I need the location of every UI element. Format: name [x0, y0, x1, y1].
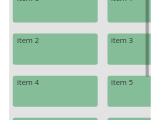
- button[interactable]: [13, 118, 98, 120]
- button[interactable]: [108, 76, 151, 107]
- staticText: item 4: [17, 77, 40, 87]
- staticText: item 1: [111, 0, 134, 3]
- button[interactable]: [13, 0, 98, 22]
- button[interactable]: [13, 76, 98, 107]
- staticText: item 2: [17, 35, 40, 45]
- button[interactable]: [108, 118, 151, 120]
- staticText: item 3: [111, 35, 134, 45]
- button[interactable]: [108, 0, 151, 22]
- other: Scroll position: [146, 0, 149, 77]
- staticText: item 0: [17, 0, 40, 3]
- button[interactable]: [13, 33, 98, 64]
- button[interactable]: [108, 33, 151, 64]
- staticText: item 5: [111, 77, 134, 87]
